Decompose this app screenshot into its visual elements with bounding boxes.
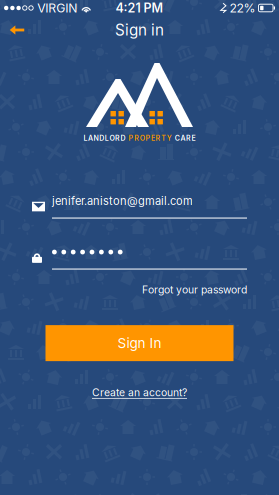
button[interactable]: Forgot your password xyxy=(142,283,247,296)
staticText: 22% xyxy=(229,1,255,15)
button[interactable]: Create an account? xyxy=(92,386,187,399)
button[interactable]: Back xyxy=(0,16,34,44)
staticText: PROPERTY xyxy=(129,134,172,142)
staticText: Forgot your password xyxy=(142,283,247,296)
staticText: Sign in xyxy=(115,21,164,39)
button[interactable]: Sign In xyxy=(45,325,233,361)
staticText: 4:21 PM xyxy=(115,0,163,16)
staticText: VIRGIN xyxy=(37,1,77,15)
staticText: CARE xyxy=(175,134,196,142)
staticText: jenifer.aniston@gmail.com xyxy=(52,194,193,208)
staticText: LANDLORD xyxy=(83,134,126,142)
staticText: Sign In xyxy=(117,335,161,351)
staticText: Create an account? xyxy=(92,386,187,399)
